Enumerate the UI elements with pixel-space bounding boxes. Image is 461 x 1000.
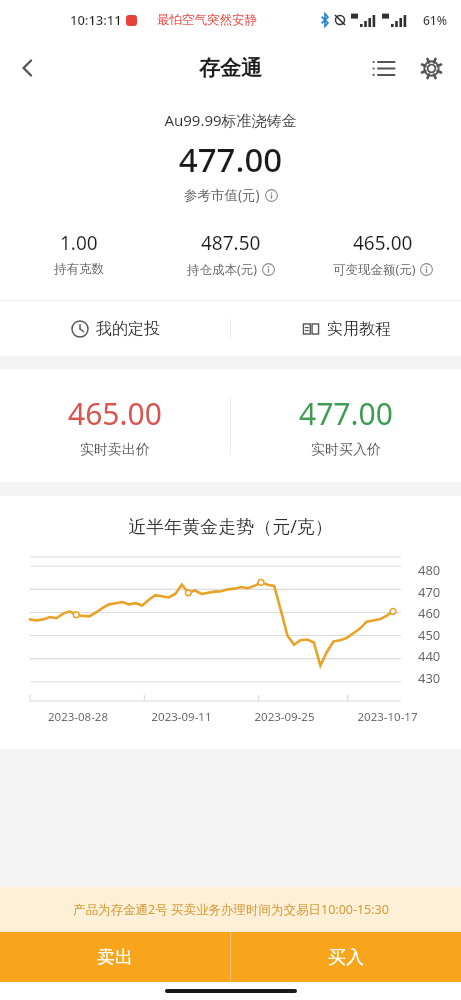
staticText: 可变现金额(元) [333, 261, 416, 278]
staticText: 465.00 [68, 393, 162, 434]
staticText: 实时买入价 [311, 441, 381, 459]
button[interactable]: 卖出 [0, 932, 230, 982]
staticText: 440 [418, 647, 441, 665]
staticText: 477.00 [0, 137, 461, 182]
staticText: 2023-10-17 [336, 709, 439, 725]
staticText: 2023-09-25 [233, 709, 336, 725]
staticText: 2023-08-28 [26, 709, 130, 725]
button[interactable]: Transaction list [361, 46, 405, 90]
button[interactable]: 实用教程 [231, 301, 461, 356]
staticText: 产品为存金通2号 买卖业务办理时间为交易日10:00-15:30 [73, 901, 389, 918]
button[interactable]: 477.00 [231, 369, 461, 482]
staticText: 2023-09-11 [130, 709, 233, 725]
staticText: 参考市值(元) [184, 186, 260, 204]
staticText: 1.00 [60, 230, 98, 256]
staticText: 近半年黄金走势（元/克） [0, 514, 461, 539]
staticText: 我的定投 [96, 319, 160, 339]
button[interactable]: 1.00 [2, 230, 155, 277]
staticText: 实时卖出价 [80, 441, 150, 459]
staticText: 10:13:11 [70, 11, 122, 29]
button[interactable]: Back [6, 46, 50, 90]
button[interactable]: Settings [409, 46, 453, 90]
staticText: 477.00 [299, 393, 393, 434]
staticText: 实用教程 [327, 319, 391, 339]
staticText: Au99.99标准浇铸金 [0, 110, 461, 130]
staticText: 465.00 [353, 230, 413, 256]
staticText: 最怕空气突然安静 [157, 12, 257, 28]
staticText: 持仓成本(元) [187, 261, 258, 278]
staticText: 460 [418, 604, 441, 622]
staticText: 470 [418, 583, 441, 601]
button[interactable]: 买入 [231, 932, 461, 982]
staticText: 卖出 [97, 946, 133, 969]
staticText: 持有克数 [54, 261, 104, 277]
staticText: 450 [418, 626, 441, 644]
staticText: 480 [418, 561, 441, 579]
staticText: 430 [418, 669, 441, 687]
button[interactable]: 465.00 [0, 369, 230, 482]
staticText: 61% [423, 12, 447, 28]
staticText: 买入 [328, 946, 364, 969]
button[interactable]: 487.50 [155, 230, 307, 278]
staticText: 487.50 [201, 230, 261, 256]
staticText: 存金通 [199, 55, 262, 81]
button[interactable]: 我的定投 [0, 301, 230, 356]
button[interactable]: 465.00 [307, 230, 459, 278]
